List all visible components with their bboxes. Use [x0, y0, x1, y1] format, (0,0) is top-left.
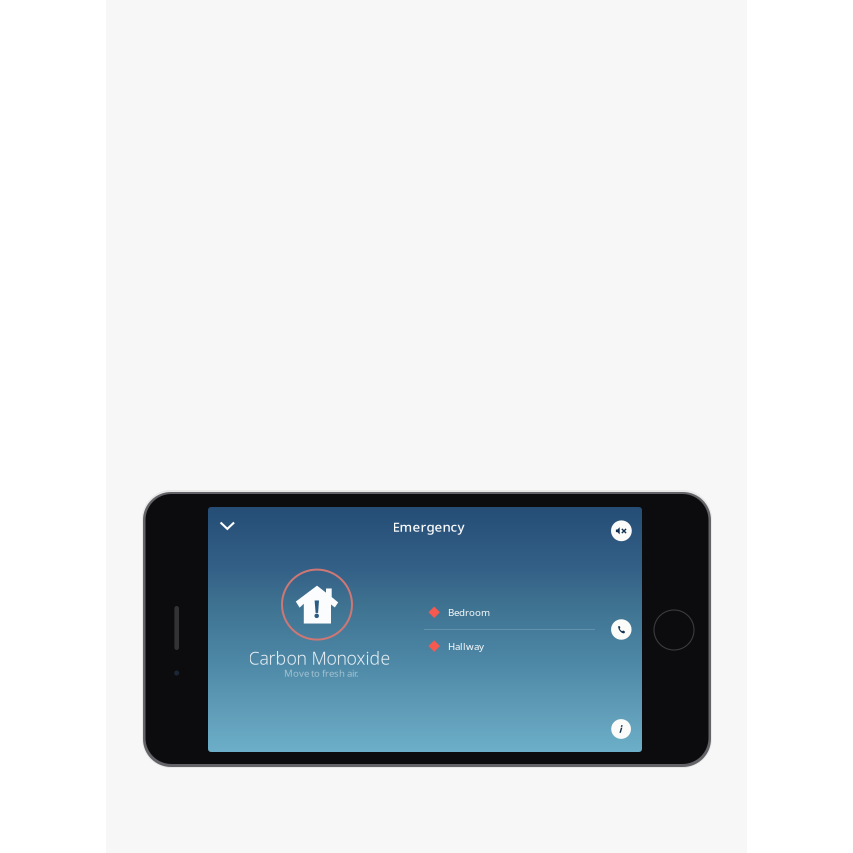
button[interactable]: Dismiss [212, 513, 242, 539]
staticText: Move to fresh air. [284, 666, 359, 680]
staticText: Hallway [448, 639, 484, 653]
button[interactable]: Call emergency services [611, 619, 631, 640]
staticText: Bedroom [448, 606, 490, 619]
button[interactable]: Mute alarm [611, 520, 632, 541]
staticText: Carbon Monoxide [248, 646, 390, 670]
button[interactable]: Hallway [424, 629, 595, 663]
staticText: Emergency [392, 517, 464, 536]
button[interactable]: More information [611, 719, 631, 739]
button[interactable]: Bedroom [424, 595, 595, 629]
